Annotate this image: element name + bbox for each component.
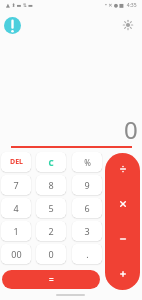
staticText: 4 — [13, 202, 19, 214]
staticText: 6 — [84, 202, 90, 214]
button[interactable]: 7 — [1, 175, 31, 195]
staticText: 7 — [13, 179, 19, 191]
staticText: 9 — [84, 179, 90, 191]
staticText: = — [49, 274, 54, 285]
staticText: . — [86, 248, 89, 260]
staticText: 8 — [48, 179, 54, 191]
staticText: C — [48, 157, 54, 168]
button[interactable]: = — [2, 270, 100, 289]
staticText: 0 — [124, 113, 138, 146]
staticText: DEL — [10, 157, 23, 167]
button[interactable]: 0 — [36, 244, 66, 264]
button[interactable]: 8 — [36, 175, 66, 195]
button[interactable]: DEL — [1, 152, 31, 172]
button[interactable]: Add — [105, 258, 140, 290]
button[interactable]: Multiply — [105, 186, 140, 221]
button[interactable]: Info — [4, 17, 21, 34]
staticText: ▲ ⬍ ▬ ⇅ ▬ — [6, 2, 33, 9]
button[interactable]: 2 — [36, 221, 66, 241]
button[interactable]: 4 — [1, 198, 31, 218]
staticText: 0 — [48, 248, 54, 260]
staticText: 1 — [13, 225, 19, 237]
staticText: • ✕ ● ■ 4:35 — [105, 2, 137, 9]
button[interactable]: 1 — [1, 221, 31, 241]
staticText: 5 — [48, 202, 54, 214]
button[interactable]: 5 — [36, 198, 66, 218]
staticText: 00 — [11, 248, 22, 260]
button[interactable]: . — [72, 244, 102, 264]
staticText: 2 — [48, 225, 54, 237]
button[interactable]: C — [36, 152, 66, 172]
button[interactable]: 00 — [1, 244, 31, 264]
staticText: % — [84, 157, 91, 168]
button[interactable]: % — [72, 152, 102, 172]
button[interactable]: 6 — [72, 198, 102, 218]
staticText: 3 — [84, 225, 90, 237]
button[interactable]: Brightness — [118, 15, 138, 35]
button[interactable]: Subtract — [105, 221, 140, 256]
button[interactable]: Divide — [105, 153, 140, 185]
button[interactable]: 9 — [72, 175, 102, 195]
button[interactable]: 3 — [72, 221, 102, 241]
